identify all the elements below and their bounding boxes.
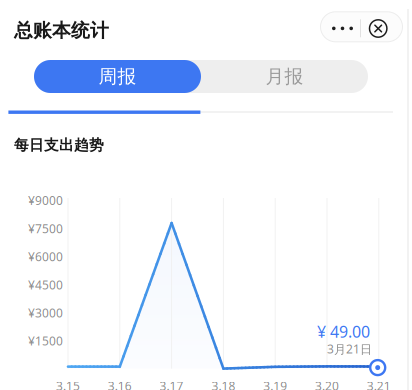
button[interactable]: More options and close bbox=[320, 12, 402, 42]
staticText: 3.19 bbox=[263, 378, 287, 390]
staticText: 3.20 bbox=[315, 378, 339, 390]
staticText: ¥1500 bbox=[28, 333, 63, 349]
staticText: 3月21日 bbox=[327, 341, 372, 357]
staticText: 周报 bbox=[98, 65, 136, 88]
staticText: ¥9000 bbox=[28, 192, 63, 208]
button[interactable]: 周报 bbox=[34, 60, 201, 93]
staticText: 总账本统计 bbox=[14, 19, 109, 42]
staticText: ¥4500 bbox=[28, 277, 63, 293]
staticText: ¥6000 bbox=[28, 249, 63, 265]
staticText: 每日支出趋势 bbox=[14, 136, 104, 154]
staticText: ¥ 49.00 bbox=[317, 321, 370, 342]
staticText: 月报 bbox=[265, 65, 303, 88]
staticText: 3.21 bbox=[367, 378, 391, 390]
button[interactable]: 月报 bbox=[201, 60, 368, 93]
staticText: 3.15 bbox=[56, 378, 80, 390]
staticText: 3.17 bbox=[160, 378, 184, 390]
staticText: 3.18 bbox=[211, 378, 235, 390]
staticText: ¥3000 bbox=[28, 305, 63, 321]
staticText: ¥7500 bbox=[28, 221, 63, 236]
staticText: 3.16 bbox=[108, 378, 132, 390]
